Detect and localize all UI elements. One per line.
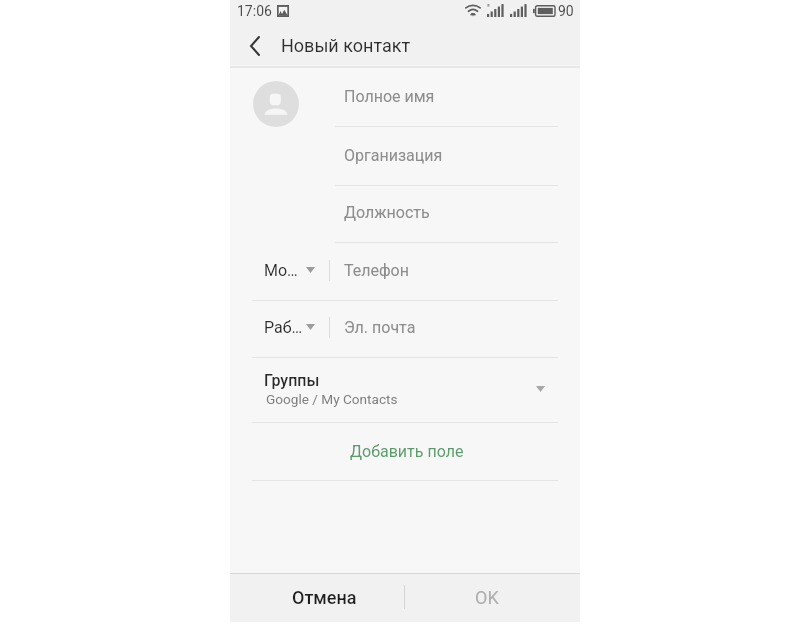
staticText: Телефон [344, 261, 409, 280]
staticText: Должность [344, 203, 430, 222]
staticText: OK [475, 587, 499, 608]
staticText: Эл. почта [344, 318, 416, 337]
button[interactable]: Отмена [230, 573, 405, 622]
staticText: Новый контакт [281, 35, 411, 56]
button[interactable]: Полное имя [335, 71, 558, 126]
button[interactable]: Организация [335, 130, 558, 185]
button[interactable]: Back [241, 32, 269, 60]
staticText: 17:06 [237, 3, 272, 19]
staticText: Google / My Contacts [266, 391, 398, 407]
button[interactable]: Раб… [252, 300, 558, 357]
staticText: 90 [558, 3, 574, 19]
staticText: Группы [264, 371, 320, 390]
button[interactable]: Мо… [252, 243, 558, 300]
staticText: Мо… [264, 261, 298, 280]
staticText: Раб… [264, 318, 303, 337]
staticText: Полное имя [344, 87, 435, 106]
button[interactable]: Должность [335, 187, 558, 242]
button[interactable]: Add photo [253, 81, 299, 127]
staticText: Добавить поле [350, 442, 464, 461]
button[interactable]: OK [405, 573, 580, 622]
button[interactable]: Группы [252, 357, 558, 422]
button[interactable]: Добавить поле [252, 422, 558, 480]
staticText: Организация [344, 146, 443, 165]
staticText: Отмена [292, 587, 357, 608]
